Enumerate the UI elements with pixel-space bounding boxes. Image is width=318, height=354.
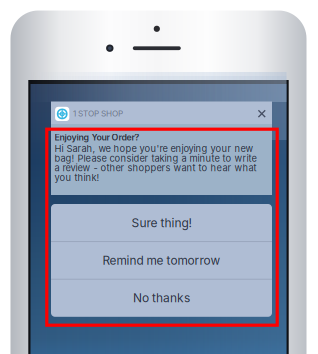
staticText: Remind me tomorrow bbox=[102, 253, 220, 268]
button[interactable]: No thanks bbox=[51, 279, 272, 317]
staticText: Hi Sarah, we hope you're enjoying your n… bbox=[55, 143, 257, 183]
staticText: Enjoying Your Order? bbox=[55, 132, 140, 143]
button[interactable]: Close bbox=[254, 106, 270, 122]
button[interactable]: Remind me tomorrow bbox=[51, 242, 272, 279]
staticText: No thanks bbox=[133, 291, 190, 305]
staticText: 1 STOP SHOP bbox=[73, 109, 123, 118]
button[interactable]: Sure thing! bbox=[51, 204, 272, 242]
staticText: Sure thing! bbox=[131, 215, 191, 230]
